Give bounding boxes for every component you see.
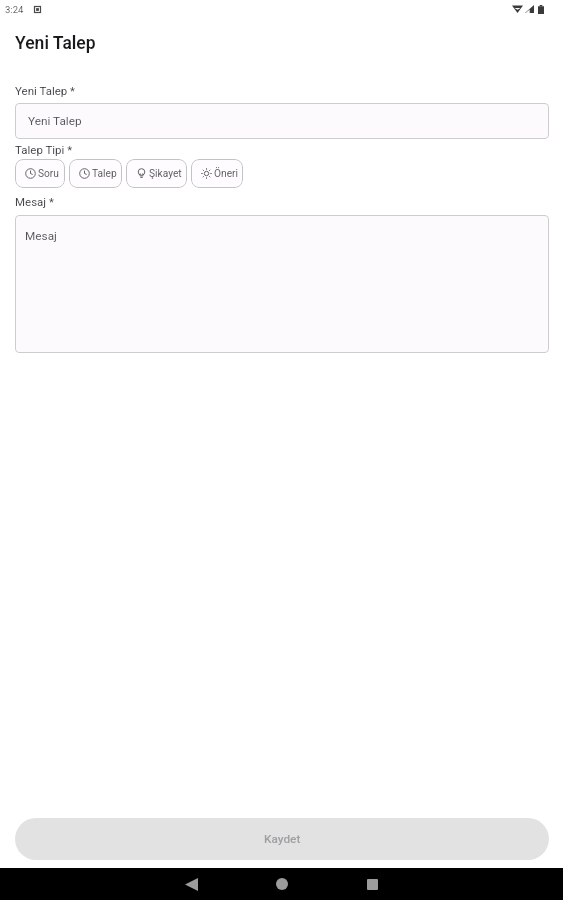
- staticText: Şikayet: [149, 168, 182, 180]
- button[interactable]: Şikayet: [126, 159, 187, 188]
- button[interactable]: Öneri: [191, 159, 243, 188]
- staticText: Soru: [38, 168, 59, 180]
- button[interactable]: Kaydet: [15, 818, 549, 860]
- button[interactable]: Recents: [327, 868, 417, 900]
- button[interactable]: Soru: [15, 159, 65, 188]
- staticText: Yeni Talep *: [15, 84, 76, 97]
- button[interactable]: Home: [237, 868, 327, 900]
- staticText: Mesaj: [25, 229, 57, 243]
- staticText: 3:24: [5, 4, 24, 15]
- staticText: Mesaj *: [15, 195, 54, 208]
- staticText: Yeni Talep: [28, 114, 82, 128]
- staticText: Talep: [92, 168, 117, 180]
- button[interactable]: Yeni Talep: [15, 103, 549, 139]
- staticText: Kaydet: [264, 832, 301, 846]
- staticText: Öneri: [214, 168, 238, 180]
- button[interactable]: Mesaj: [15, 215, 549, 353]
- staticText: Yeni Talep: [15, 33, 96, 54]
- staticText: Talep Tipi *: [15, 143, 73, 156]
- button[interactable]: Back: [146, 868, 236, 900]
- button[interactable]: Talep: [69, 159, 122, 188]
